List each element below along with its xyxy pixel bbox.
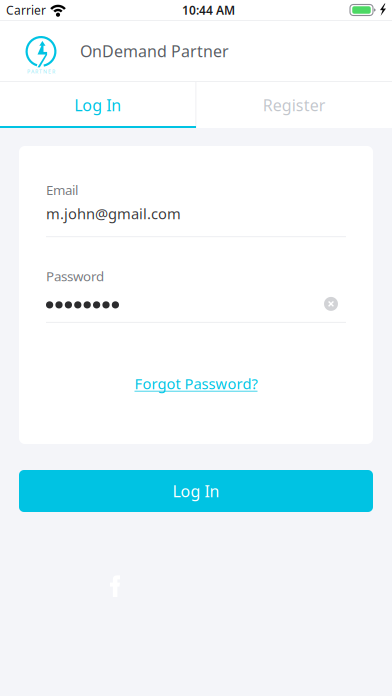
staticText: m.john@gmail.com — [46, 204, 181, 223]
button[interactable]: Clear password — [320, 293, 342, 315]
staticText: Carrier — [6, 2, 46, 18]
button[interactable]: Log In — [19, 470, 373, 512]
staticText: Forgot Password? — [134, 374, 257, 393]
staticText: Password — [46, 267, 104, 285]
staticText: OnDemand Partner — [80, 40, 229, 62]
staticText: Email — [46, 181, 78, 199]
staticText: P A R T N E R — [27, 68, 55, 75]
button[interactable]: Sign in with Facebook — [106, 575, 124, 597]
staticText: 10:44 AM — [182, 2, 235, 18]
staticText: Log In — [172, 480, 219, 502]
button[interactable]: Log In — [0, 82, 195, 128]
button[interactable]: Forgot Password? — [46, 323, 346, 393]
button[interactable]: Register — [196, 82, 392, 128]
staticText: Log In — [74, 94, 121, 116]
staticText: Register — [263, 94, 326, 116]
